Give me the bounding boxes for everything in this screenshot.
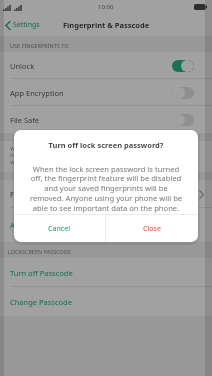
button[interactable]: Unlock [0,52,212,79]
button[interactable]: Add a fingerprint [0,208,212,242]
button[interactable]: Fingerprint 1 [0,180,212,208]
staticText: 10:00 [98,3,114,11]
staticText: Turn off Passcode [10,268,73,278]
staticText: Fingerprint & Passcode [63,20,150,30]
button[interactable] [172,87,194,99]
staticText: USE FINGERPRINTS TO [10,42,69,49]
button[interactable]: Change Passcode [0,287,212,316]
staticText: Add a fingerprint [10,220,71,230]
button[interactable] [172,114,194,126]
staticText: When the lock screen password is turned … [14,164,198,214]
button[interactable]: Turn off Passcode [0,258,212,287]
staticText: Fingerprint 1 [10,189,56,199]
button[interactable]: File Safe [0,106,212,133]
staticText: Unlock [10,61,35,71]
staticText: LOCKSCREEN PASSCODE [8,248,71,255]
staticText: App Encryption [10,88,64,98]
button[interactable]: Settings [5,20,40,30]
staticText: File Safe [10,115,40,125]
staticText: Settings [13,20,40,30]
button[interactable] [172,60,194,72]
staticText: Change Passcode [10,297,72,307]
button[interactable]: App Encryption [0,79,212,106]
button[interactable]: Cancel [14,215,105,242]
staticText: Close [143,224,162,234]
button[interactable]: Close [106,215,198,242]
staticText: Cancel [48,224,71,234]
staticText: Turn off lock screen password? [14,140,198,150]
staticText: You can add up to 5 fingerprints that ca… [10,145,109,166]
